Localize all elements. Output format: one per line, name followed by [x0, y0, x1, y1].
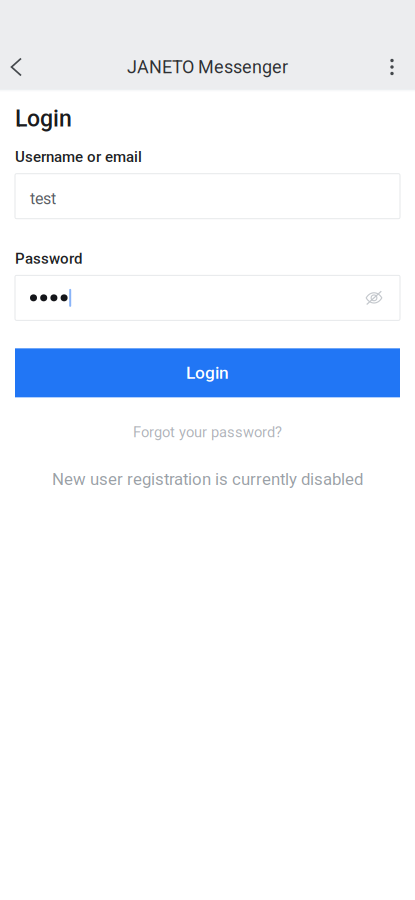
button[interactable]: Back [1, 45, 31, 89]
button[interactable]: Login [15, 348, 400, 397]
staticText: test [30, 189, 56, 208]
staticText: Password [15, 250, 82, 267]
button[interactable]: More options [377, 45, 407, 89]
staticText: Username or email [15, 148, 142, 166]
staticText: JANETO Messenger [127, 56, 288, 78]
staticText: Login [15, 105, 72, 132]
button[interactable]: Forgot your password? [15, 415, 400, 449]
button[interactable]: Show password [365, 280, 400, 316]
staticText: Forgot your password? [133, 424, 282, 441]
staticText: Login [186, 363, 229, 383]
staticText: New user registration is currently disab… [52, 469, 363, 489]
